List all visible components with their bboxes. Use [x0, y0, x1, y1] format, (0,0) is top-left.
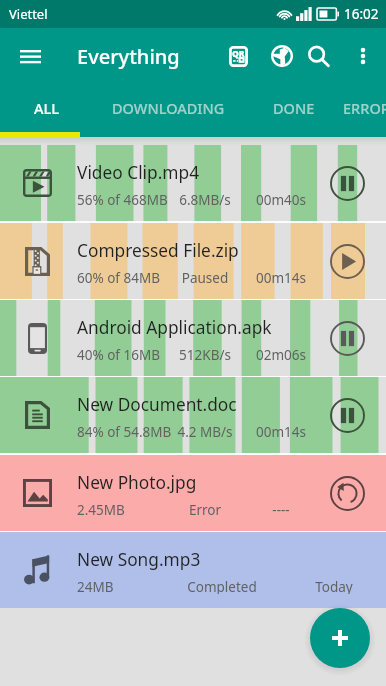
button[interactable]: Open navigation menu [8, 34, 52, 78]
staticText: Everything [77, 43, 180, 70]
staticText: ---- [254, 501, 308, 517]
staticText: Viettel [9, 5, 48, 23]
button[interactable]: Android Application.apk [0, 300, 386, 376]
button[interactable]: Compressed File.zip [0, 223, 386, 299]
staticText: DONE [273, 98, 315, 118]
button[interactable]: Add download [310, 608, 370, 668]
staticText: Today [295, 578, 373, 594]
staticText: 6.8MB/s [176, 191, 234, 207]
staticText: Error [176, 501, 234, 517]
staticText: 84% of 54.8MB [77, 423, 172, 439]
staticText: 56% of 468MB [77, 191, 168, 207]
staticText: 16:02 [344, 5, 379, 23]
staticText: New Photo.jpg [77, 471, 197, 495]
staticText: New Song.mp3 [77, 548, 201, 572]
staticText: 512KB/s [176, 346, 234, 362]
staticText: ALL [34, 98, 59, 118]
button[interactable]: Pause download [327, 318, 367, 358]
staticText: Compressed File.zip [77, 239, 239, 263]
staticText: 00m14s [254, 269, 308, 285]
staticText: ERROR [343, 98, 386, 118]
staticText: 4.2 MB/s [176, 423, 234, 439]
button[interactable]: ALL [0, 84, 92, 131]
staticText: DOWNLOADING [112, 98, 225, 118]
staticText: 60% of 84MB [77, 269, 160, 285]
button[interactable]: ERROR [343, 84, 386, 131]
staticText: 2.45MB [77, 501, 125, 517]
staticText: Paused [176, 269, 234, 285]
button[interactable]: Retry download [327, 473, 367, 513]
button[interactable]: More options [341, 34, 385, 78]
button[interactable]: Pause download [327, 163, 367, 203]
staticText: 24MB [77, 578, 114, 594]
button[interactable]: DONE [245, 84, 343, 131]
staticText: 00m40s [254, 191, 308, 207]
staticText: 00m14s [254, 423, 308, 439]
staticText: Video Clip.mp4 [77, 161, 200, 185]
button[interactable]: New Photo.jpg [0, 455, 386, 531]
staticText: Completed [182, 578, 262, 594]
button[interactable]: Pause download [327, 395, 367, 435]
button[interactable]: DOWNLOADING [92, 84, 245, 131]
staticText: 40% of 16MB [77, 346, 160, 362]
staticText: QR [232, 48, 245, 60]
staticText: 02m06s [254, 346, 308, 362]
button[interactable]: Scan QR code [216, 34, 260, 78]
button[interactable]: New Song.mp3 [0, 532, 386, 608]
staticText: New Document.doc [77, 393, 237, 417]
button[interactable]: Open browser [260, 34, 304, 78]
button[interactable]: Resume download [327, 241, 367, 281]
button[interactable]: Video Clip.mp4 [0, 145, 386, 221]
staticText: Android Application.apk [77, 316, 272, 340]
button[interactable]: New Document.doc [0, 377, 386, 453]
button[interactable]: Search [296, 34, 340, 78]
